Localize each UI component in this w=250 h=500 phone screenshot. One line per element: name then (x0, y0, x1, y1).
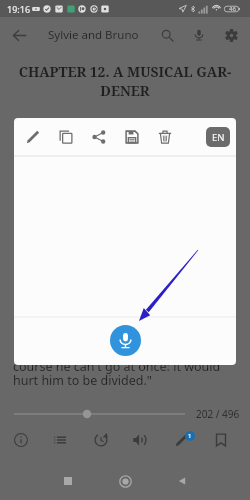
button[interactable]: EN (206, 127, 230, 147)
button[interactable]: Notes (165, 423, 199, 457)
button[interactable]: Recents (52, 465, 84, 497)
button[interactable]: Save (115, 118, 148, 156)
staticText: 19:16 (7, 3, 31, 15)
button[interactable]: Search (151, 19, 183, 51)
staticText: EN (212, 131, 225, 144)
button[interactable]: Record voice (110, 325, 141, 356)
button[interactable]: Bookmark (204, 423, 238, 457)
button[interactable]: History (84, 423, 118, 457)
button[interactable]: Settings (215, 19, 247, 51)
staticText: 46 (229, 5, 236, 13)
button[interactable]: Copy (49, 118, 82, 156)
button[interactable]: Voice search (183, 19, 215, 51)
button[interactable]: Delete (148, 118, 181, 156)
button[interactable]: Edit (16, 118, 49, 156)
staticText: course he can't go at once: it would hur… (13, 358, 250, 389)
button[interactable]: Volume (123, 423, 157, 457)
staticText: CHAPTER 12. A MUSICAL GAR- DENER (8, 62, 242, 100)
button[interactable]: Home (109, 465, 141, 497)
staticText: 202 / 496 (196, 407, 240, 421)
button[interactable]: Share (82, 118, 115, 156)
staticText: 1 (188, 432, 192, 440)
button[interactable]: Info (4, 423, 38, 457)
staticText: Sylvie and Bruno (48, 27, 139, 43)
button[interactable]: Table of contents (43, 423, 77, 457)
button[interactable]: Back (3, 19, 36, 52)
button[interactable]: Back (166, 465, 198, 497)
button[interactable]: Page position (0, 404, 250, 424)
